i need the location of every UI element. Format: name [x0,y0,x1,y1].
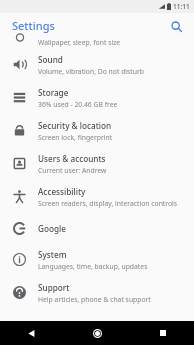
staticText: 11:11 [173,2,190,11]
staticText: System [38,249,67,260]
staticText: Wallpaper, sleep, font size [38,38,121,47]
button[interactable]: Recents [154,324,172,342]
staticText: Accessibility [38,186,86,197]
staticText: Help articles, phone & chat support [38,295,151,304]
button[interactable]: Google [0,213,194,243]
button[interactable]: Wallpaper, sleep, font size [0,39,194,48]
staticText: Google [38,223,66,234]
button[interactable]: Sound [0,48,194,81]
button[interactable]: Accessibility [0,180,194,213]
button[interactable]: System [0,243,194,276]
button[interactable]: Back [22,324,40,342]
staticText: Screen readers, display, interaction con… [38,199,178,208]
button[interactable]: Support [0,276,194,309]
staticText: Volume, vibration, Do not disturb [38,67,144,76]
staticText: Languages, time, backup, updates [38,262,148,271]
staticText: Screen lock, fingerprint [38,133,113,142]
staticText: 36% used - 20.46 GB free [38,100,118,109]
button[interactable]: Security & location [0,114,194,147]
button[interactable]: Storage [0,81,194,114]
staticText: Storage [38,87,69,98]
staticText: Current user: Andrew [38,166,107,175]
staticText: Users & accounts [38,153,106,164]
button[interactable]: Users & accounts [0,147,194,180]
staticText: Settings [12,18,55,33]
button[interactable]: Search [166,16,186,36]
button[interactable]: Home [88,324,106,342]
staticText: Sound [38,54,63,65]
staticText: Security & location [38,120,112,131]
staticText: Support [38,282,70,293]
